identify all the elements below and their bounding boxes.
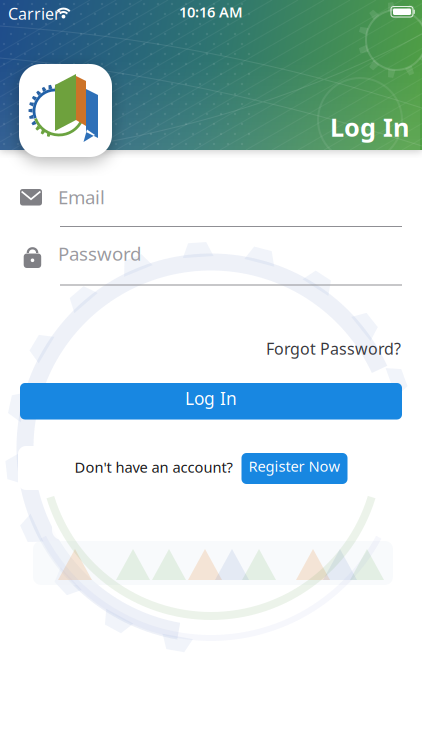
staticText: Forgot Password? (266, 338, 401, 359)
staticText: Carrier (8, 3, 61, 24)
staticText: Log In (185, 387, 237, 410)
staticText: Email (58, 184, 105, 209)
staticText: Don't have an account? (74, 457, 232, 477)
staticText: Register Now (248, 456, 340, 476)
staticText: Password (58, 241, 141, 266)
staticText: Log In (330, 110, 409, 144)
staticText: 10:16 AM (179, 2, 243, 21)
